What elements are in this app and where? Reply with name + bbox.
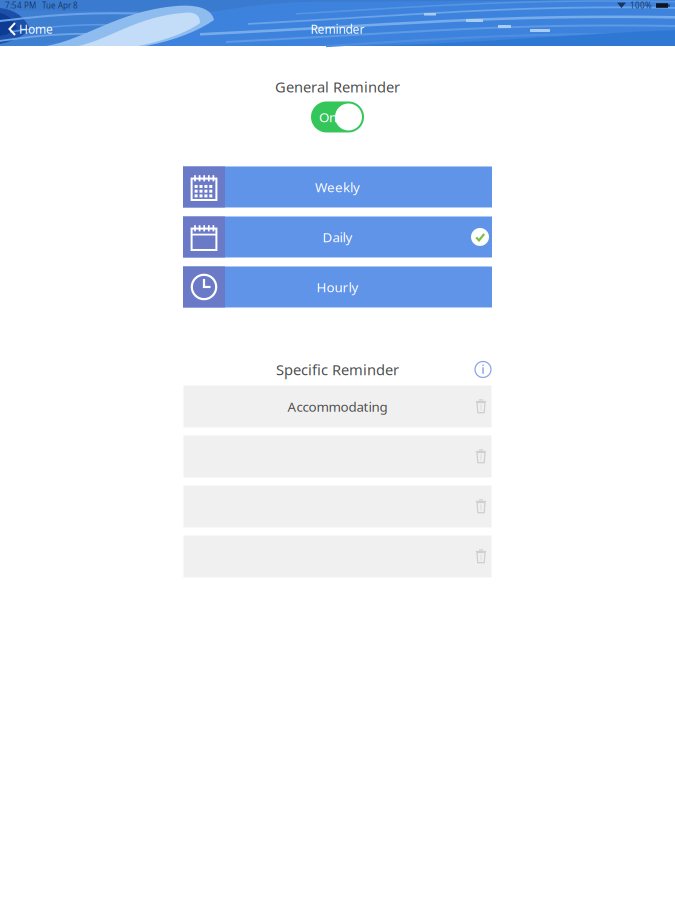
button[interactable]: Accommodating [183, 385, 491, 427]
button[interactable]: Information [474, 360, 492, 378]
staticText: 7:54 PM Tue Apr 8 [5, 0, 78, 11]
staticText: Accommodating [287, 398, 387, 415]
staticText: Weekly [315, 178, 360, 196]
staticText: Specific Reminder [276, 360, 399, 379]
staticText: Reminder [310, 21, 364, 37]
staticText: Hourly [316, 278, 358, 296]
button[interactable]: On [311, 101, 364, 132]
staticText: Daily [322, 228, 352, 246]
staticText: 100% [630, 0, 652, 11]
button[interactable]: Home [0, 21, 53, 37]
button[interactable]: Hourly [183, 266, 492, 307]
staticText: General Reminder [275, 77, 400, 96]
button[interactable]: Weekly [183, 166, 492, 207]
staticText: Home [19, 21, 53, 37]
button[interactable]: Daily [183, 216, 492, 257]
staticText: On [319, 108, 337, 126]
